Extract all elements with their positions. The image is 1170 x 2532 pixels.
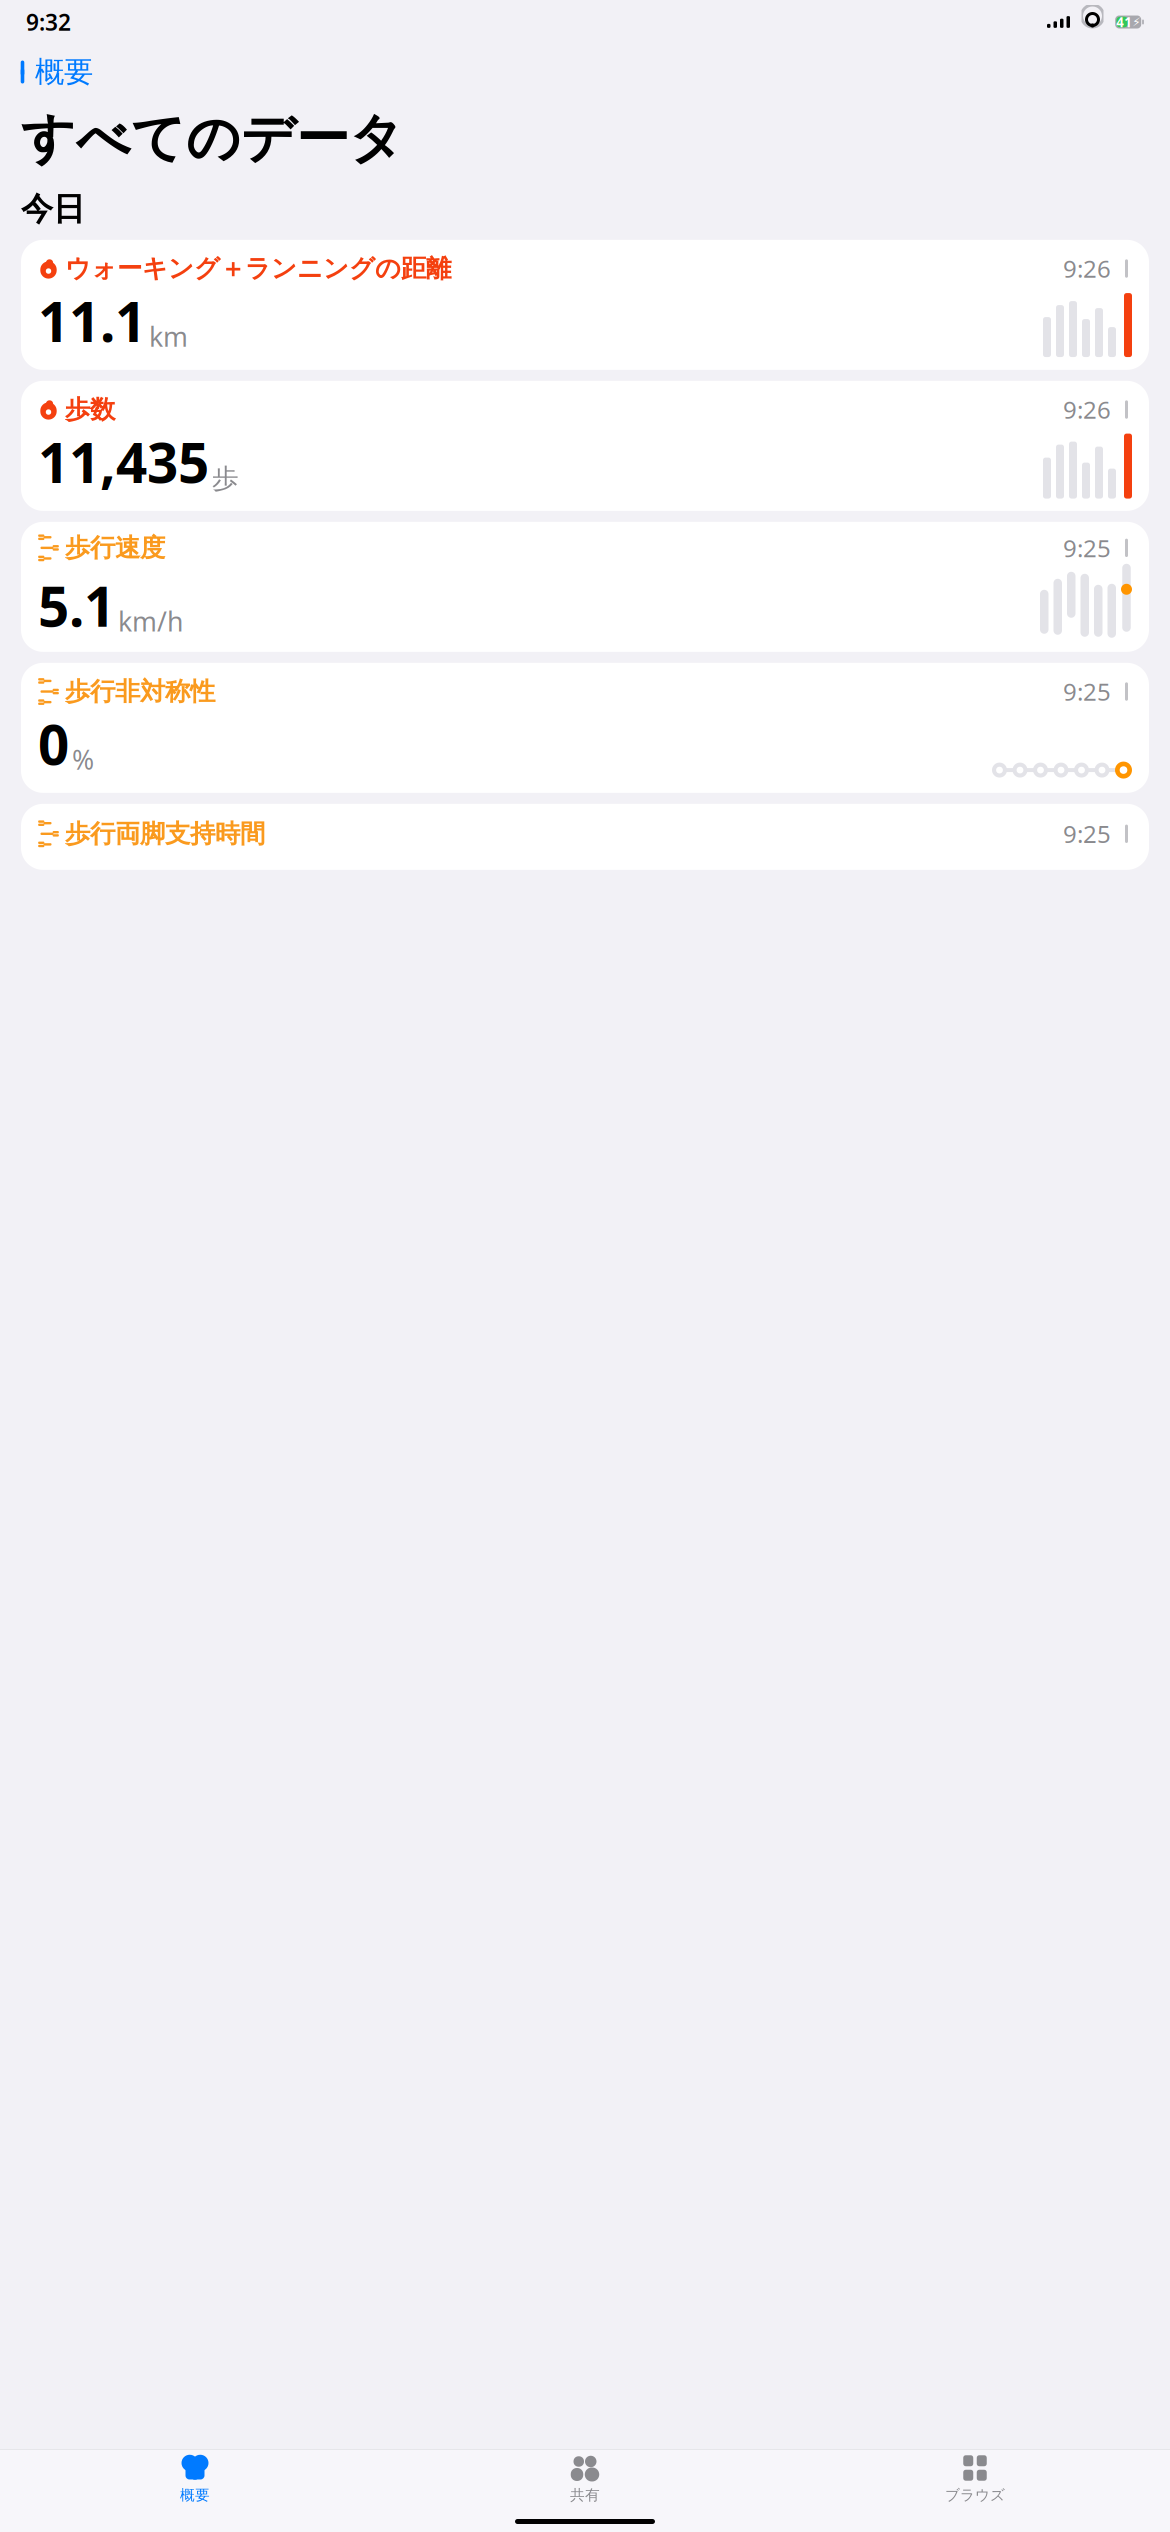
staticText: % (72, 742, 94, 777)
staticText: km/h (118, 603, 183, 639)
staticText: 歩数 (65, 394, 115, 425)
staticText: ⚡︎ (1132, 15, 1140, 29)
staticText: 41 (1116, 13, 1132, 31)
staticText: 歩行非対称性 (65, 676, 215, 707)
staticText: 5.1 (38, 569, 115, 642)
button[interactable]: 歩数 (21, 381, 1149, 511)
staticText: 歩 (212, 462, 239, 495)
staticText: ウォーキング＋ランニングの距離 (65, 253, 451, 284)
button[interactable]: 歩行非対称性 (21, 663, 1149, 793)
staticText: 9:25 (1063, 676, 1111, 707)
staticText: km (149, 319, 188, 354)
button[interactable]: 概要 (8, 48, 101, 96)
staticText: ブラウズ (945, 2486, 1005, 2504)
staticText: 共有 (570, 2486, 600, 2504)
button[interactable]: 共有 (390, 2445, 780, 2506)
button[interactable]: 歩行速度 (21, 522, 1149, 652)
staticText: 9:32 (26, 7, 71, 37)
button[interactable]: 概要 (0, 2445, 390, 2506)
staticText: 9:25 (1063, 818, 1111, 850)
button[interactable]: ブラウズ (780, 2445, 1170, 2506)
staticText: 9:26 (1063, 253, 1111, 284)
staticText: 今日 (21, 189, 85, 229)
staticText: 9:26 (1063, 394, 1111, 425)
staticText: 歩行速度 (65, 532, 165, 563)
button[interactable]: 歩行両脚支持時間 (21, 804, 1149, 870)
staticText: 歩行両脚支持時間 (65, 818, 265, 849)
staticText: 11,435 (38, 425, 209, 498)
staticText: 概要 (180, 2486, 210, 2504)
staticText: 11.1 (38, 284, 146, 357)
button[interactable]: ウォーキング＋ランニングの距離 (21, 240, 1149, 370)
staticText: 9:25 (1063, 532, 1111, 564)
staticText: すべてのデータ (21, 106, 404, 171)
staticText: 0 (38, 707, 69, 780)
staticText: 概要 (35, 54, 93, 90)
